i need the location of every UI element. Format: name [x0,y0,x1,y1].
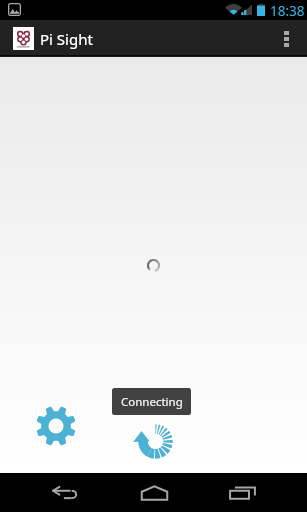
button[interactable]: Back [42,473,88,512]
staticText: 18:38 [270,2,305,20]
button[interactable]: More options [266,20,307,57]
staticText: Pi Sight [40,29,93,49]
button[interactable]: Home [131,473,177,512]
button[interactable]: Recent apps [219,473,265,512]
staticText: Connecting [121,394,183,410]
button[interactable]: Refresh [129,421,175,467]
button[interactable]: Settings [34,405,78,449]
